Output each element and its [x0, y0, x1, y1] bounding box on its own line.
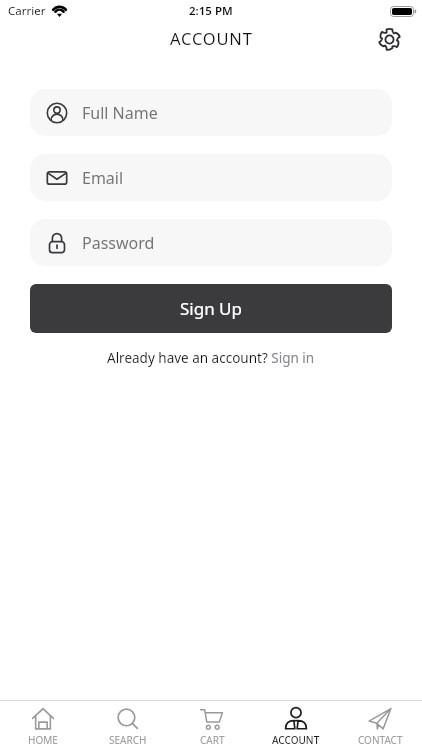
- staticText: Password: [82, 232, 155, 254]
- button[interactable]: CONTACT: [338, 701, 422, 750]
- button[interactable]: Full Name: [30, 89, 392, 136]
- staticText: CONTACT: [358, 733, 403, 747]
- button[interactable]: Already have an account? Sign in: [107, 349, 315, 367]
- button[interactable]: Email: [30, 154, 392, 201]
- staticText: ACCOUNT: [272, 733, 320, 747]
- button[interactable]: HOME: [0, 701, 85, 750]
- button[interactable]: [375, 24, 403, 52]
- staticText: Sign Up: [180, 297, 242, 320]
- button[interactable]: CART: [170, 701, 254, 750]
- staticText: CART: [200, 733, 225, 747]
- button[interactable]: Password: [30, 219, 392, 266]
- staticText: ACCOUNT: [170, 27, 253, 49]
- staticText: Email: [82, 167, 124, 189]
- staticText: 2:15 PM: [189, 3, 233, 19]
- button[interactable]: Sign Up: [30, 284, 392, 333]
- staticText: Full Name: [82, 102, 158, 124]
- button[interactable]: SEARCH: [85, 701, 170, 750]
- staticText: SEARCH: [109, 733, 147, 747]
- staticText: Carrier: [8, 3, 46, 19]
- button[interactable]: ACCOUNT: [254, 701, 338, 750]
- staticText: HOME: [28, 733, 58, 747]
